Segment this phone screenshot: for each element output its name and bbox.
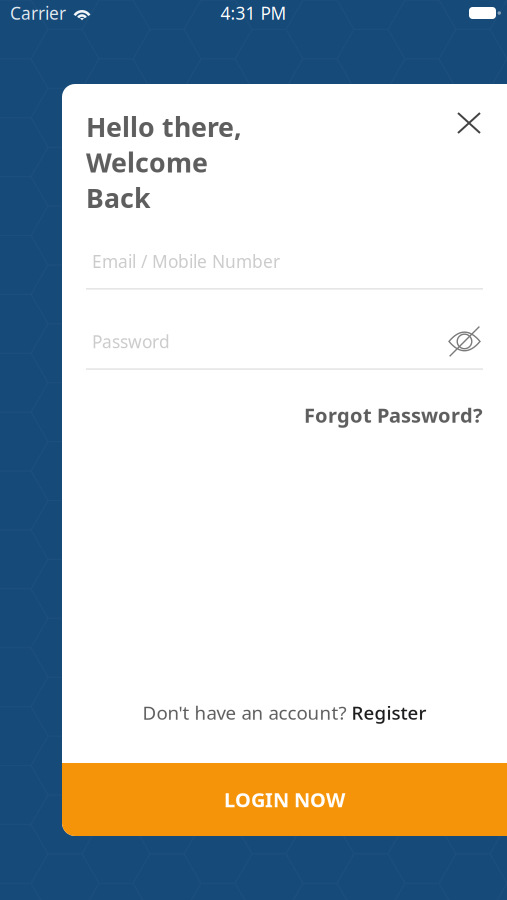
button[interactable]: Register — [351, 700, 426, 725]
staticText: Email / Mobile Number — [92, 250, 280, 273]
button[interactable]: Forgot Password? — [62, 402, 507, 428]
staticText: Register — [351, 700, 426, 725]
staticText: 4:31 PM — [220, 1, 286, 24]
button[interactable]: LOGIN NOW — [62, 763, 507, 836]
staticText: Carrier — [10, 1, 66, 24]
button[interactable]: Show password — [449, 326, 483, 357]
staticText: LOGIN NOW — [224, 786, 345, 813]
staticText: Password — [92, 330, 170, 353]
staticText: Forgot Password? — [304, 402, 483, 428]
staticText: Hello there, Welcome Back — [86, 109, 242, 215]
button[interactable]: Close — [444, 109, 483, 140]
staticText: Don't have an account? — [142, 700, 351, 725]
